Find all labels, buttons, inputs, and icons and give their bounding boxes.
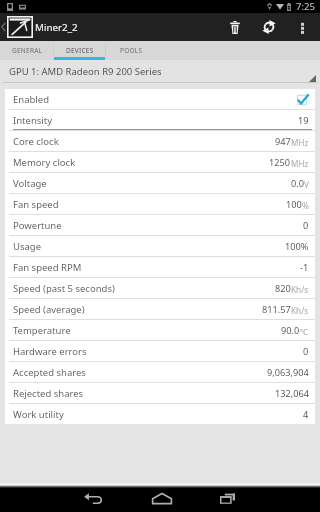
- staticText: GENERAL: [12, 46, 43, 55]
- staticText: Accepted shares: [13, 366, 86, 379]
- staticText: Core clock: [13, 135, 59, 148]
- button[interactable]: Intensity: [5, 110, 315, 130]
- staticText: Voltage: [13, 177, 47, 190]
- button[interactable]: Back: [70, 488, 116, 508]
- staticText: 9,063,904: [267, 366, 309, 379]
- staticText: 1250: [269, 156, 291, 169]
- staticText: GPU 1: AMD Radeon R9 200 Series: [9, 65, 162, 78]
- staticText: Speed (average): [13, 303, 85, 316]
- staticText: DEVICES: [66, 46, 94, 55]
- staticText: 19: [298, 114, 309, 127]
- button[interactable]: Temperature: [5, 320, 315, 340]
- staticText: 0.0: [291, 177, 304, 190]
- button[interactable]: Rejected shares: [5, 383, 315, 403]
- button[interactable]: Fan speed: [5, 194, 315, 214]
- staticText: 7:25: [296, 0, 315, 13]
- button[interactable]: Speed (average): [5, 299, 315, 319]
- button[interactable]: POOLS: [106, 41, 157, 60]
- staticText: Work utility: [13, 408, 64, 421]
- button[interactable]: Voltage: [5, 173, 315, 193]
- staticText: Hardware errors: [13, 345, 87, 358]
- staticText: 811.57: [262, 303, 291, 316]
- staticText: Miner2_2: [35, 21, 78, 34]
- staticText: Kh/s: [291, 284, 309, 295]
- button[interactable]: Home: [139, 488, 185, 508]
- staticText: POOLS: [120, 46, 143, 55]
- staticText: 100: [286, 198, 302, 211]
- staticText: %: [302, 200, 309, 211]
- staticText: MHz: [291, 158, 309, 169]
- button[interactable]: More options: [285, 13, 320, 41]
- staticText: Temperature: [13, 324, 71, 337]
- staticText: Kh/s: [291, 305, 309, 316]
- button[interactable]: Core clock: [5, 131, 315, 151]
- button[interactable]: Miner2_2: [0, 13, 78, 41]
- staticText: Fan speed RPM: [13, 261, 82, 274]
- staticText: Powertune: [13, 219, 62, 232]
- staticText: 4: [303, 408, 309, 421]
- staticText: MHz: [291, 137, 309, 148]
- staticText: 947: [275, 135, 291, 148]
- button[interactable]: Work utility: [5, 404, 315, 424]
- button[interactable]: Recent apps: [204, 488, 250, 508]
- staticText: 820: [275, 282, 291, 295]
- button[interactable]: Hardware errors: [5, 341, 315, 361]
- staticText: ℃: [300, 326, 309, 337]
- button[interactable]: Speed (past 5 seconds): [5, 278, 315, 298]
- button[interactable]: Refresh: [252, 13, 285, 41]
- button[interactable]: Memory clock: [5, 152, 315, 172]
- staticText: 0: [303, 219, 309, 232]
- button[interactable]: Usage: [5, 236, 315, 256]
- staticText: 0: [303, 345, 309, 358]
- staticText: Intensity: [13, 114, 53, 127]
- button[interactable]: Accepted shares: [5, 362, 315, 382]
- button[interactable]: Powertune: [5, 215, 315, 235]
- staticText: Fan speed: [13, 198, 59, 211]
- staticText: 132,064: [275, 387, 309, 400]
- button[interactable]: Enabled: [5, 89, 315, 109]
- staticText: -1: [300, 261, 309, 274]
- staticText: Usage: [13, 240, 42, 253]
- button[interactable]: GPU 1: AMD Radeon R9 200 Series: [2, 60, 318, 82]
- staticText: Rejected shares: [13, 387, 84, 400]
- staticText: V: [304, 179, 309, 190]
- button[interactable]: Delete: [218, 13, 252, 41]
- staticText: Speed (past 5 seconds): [13, 282, 115, 295]
- staticText: 100%: [285, 240, 309, 253]
- staticText: 90.0: [281, 324, 300, 337]
- staticText: Enabled: [13, 93, 49, 106]
- button[interactable]: DEVICES: [54, 41, 105, 60]
- button[interactable]: GENERAL: [2, 41, 53, 60]
- staticText: Memory clock: [13, 156, 76, 169]
- button[interactable]: Fan speed RPM: [5, 257, 315, 277]
